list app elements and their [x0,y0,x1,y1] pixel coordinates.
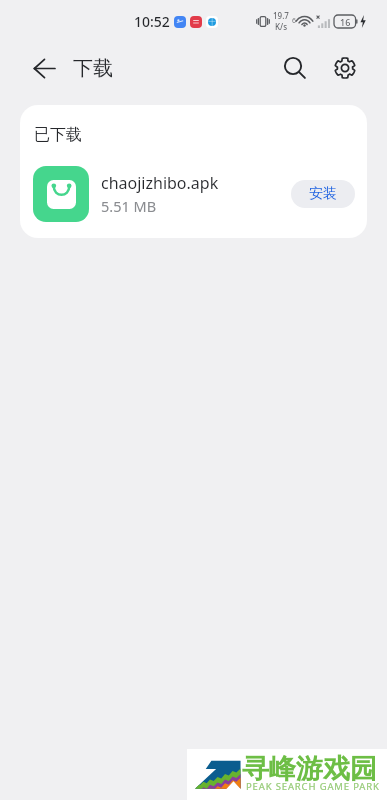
button[interactable]: chaojizhibo.apk [20,166,367,222]
button[interactable]: Back [22,46,66,90]
button[interactable]: Settings [325,48,365,88]
staticText: K/s [275,21,288,32]
staticText: 19.7 [273,10,289,21]
staticText: PEAK SEARCH GAME PARK [246,780,380,793]
staticText: 已下载 [34,125,82,145]
staticText: 5.51 MB [101,196,157,216]
staticText: 10:52 [134,12,170,31]
staticText: 安装 [309,185,337,203]
button[interactable]: Search [275,48,315,88]
staticText: 下载 [73,56,113,81]
staticText: chaojizhibo.apk [101,172,219,194]
staticText: 6 [292,16,297,26]
button[interactable]: 安装 [291,180,355,208]
staticText: 寻峰游戏园 [242,752,377,786]
staticText: 16 [340,16,351,28]
